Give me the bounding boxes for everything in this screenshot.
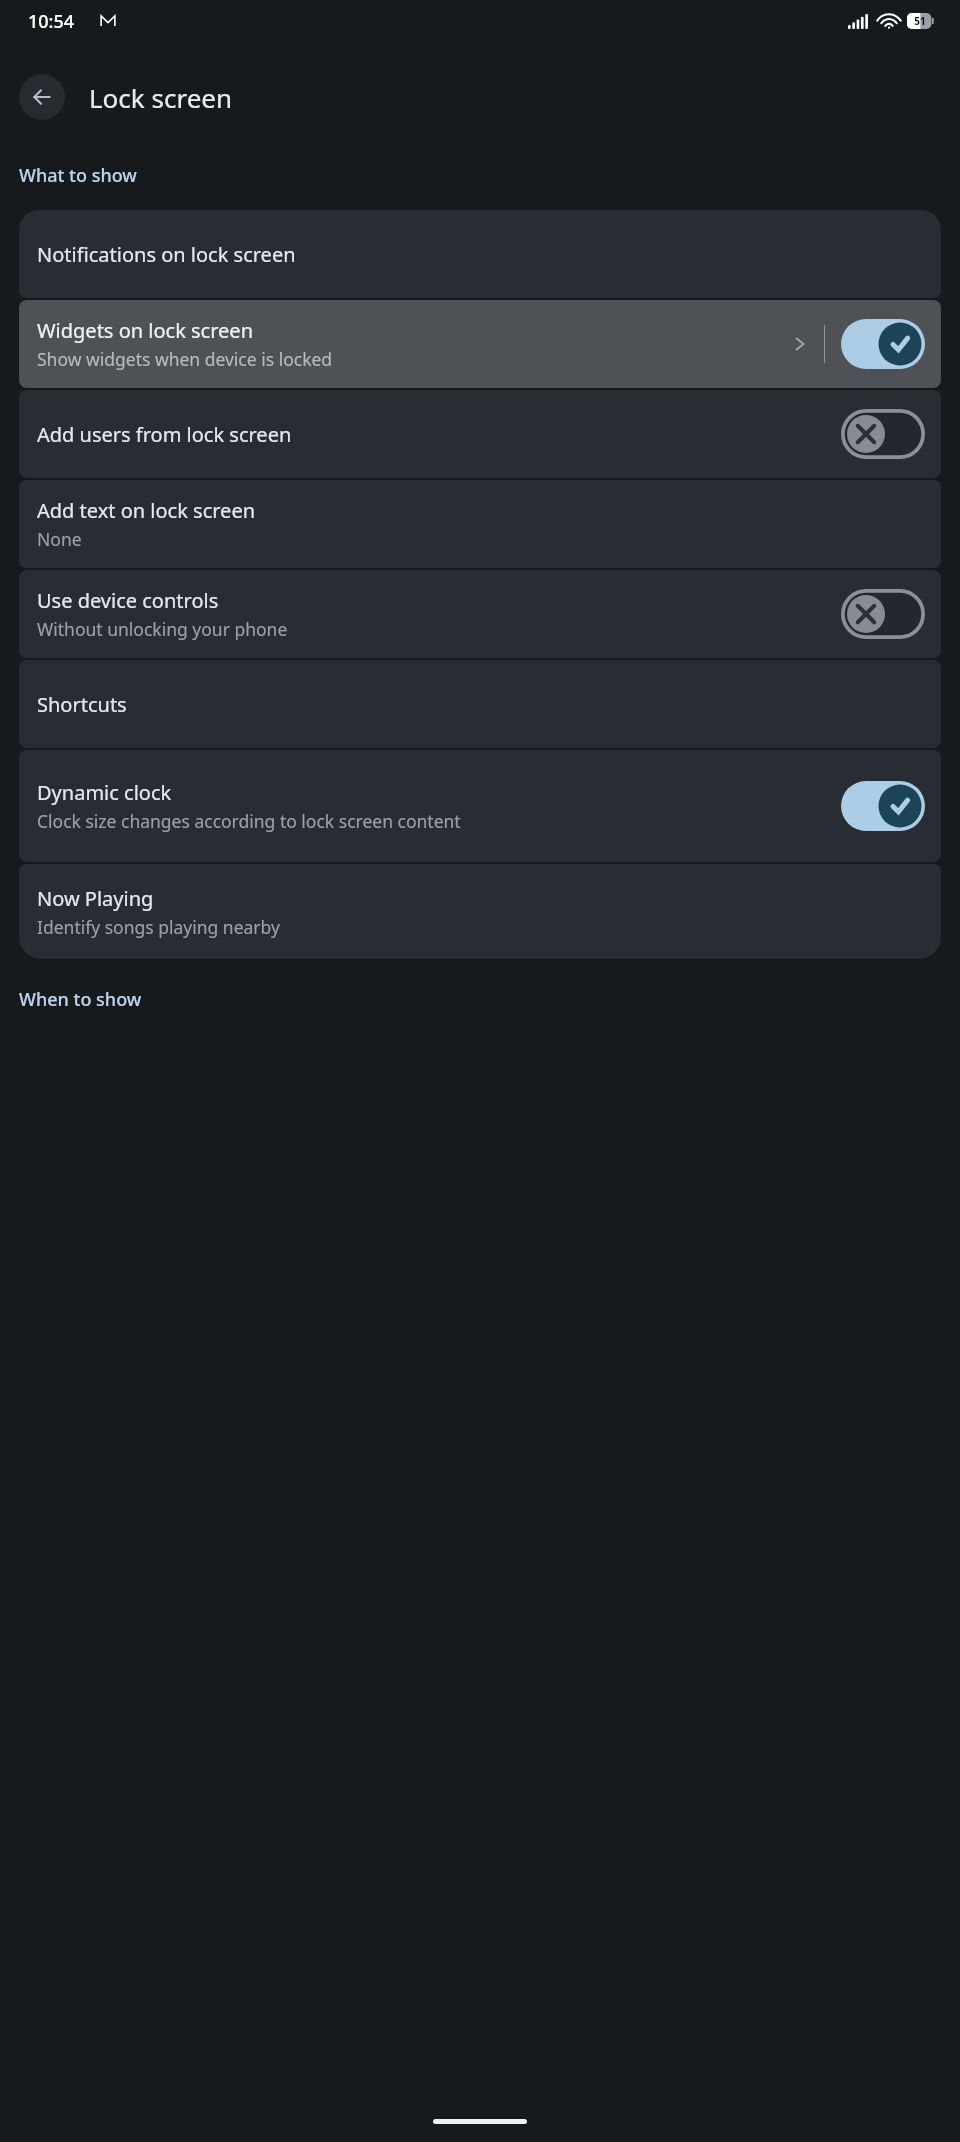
button[interactable]: Toggle on — [841, 781, 925, 831]
button[interactable]: Use device controls — [19, 570, 941, 658]
staticText: Notifications on lock screen — [37, 241, 296, 268]
staticText: Add text on lock screen — [37, 497, 256, 524]
staticText: Shortcuts — [37, 691, 127, 718]
staticText: Now Playing — [37, 885, 154, 912]
button[interactable]: Add text on lock screen — [19, 480, 941, 568]
button[interactable]: Shortcuts — [19, 660, 941, 748]
staticText: Without unlocking your phone — [37, 617, 288, 641]
staticText: Widgets on lock screen — [37, 317, 253, 344]
staticText: Dynamic clock — [37, 779, 172, 806]
button[interactable]: Add users from lock screen — [19, 390, 941, 478]
staticText: Lock screen — [89, 80, 233, 115]
button[interactable]: Toggle off — [841, 589, 925, 639]
staticText: Clock size changes according to lock scr… — [37, 809, 461, 833]
staticText: What to show — [19, 163, 137, 188]
button[interactable]: Now Playing — [19, 864, 941, 959]
button[interactable]: Widgets on lock screen — [19, 300, 941, 388]
button[interactable]: Toggle off — [841, 409, 925, 459]
staticText: Identify songs playing nearby — [37, 915, 280, 939]
staticText: When to show — [19, 987, 142, 1012]
staticText: 51 — [914, 14, 926, 28]
button[interactable]: Dynamic clock — [19, 750, 941, 862]
button[interactable]: Notifications on lock screen — [19, 210, 941, 298]
button[interactable]: Toggle on — [841, 319, 925, 369]
staticText: Show widgets when device is locked — [37, 347, 333, 371]
button[interactable]: Back — [19, 74, 65, 120]
staticText: Use device controls — [37, 587, 219, 614]
staticText: None — [37, 527, 82, 551]
staticText: 10:54 — [28, 9, 75, 34]
staticText: Add users from lock screen — [37, 421, 292, 448]
